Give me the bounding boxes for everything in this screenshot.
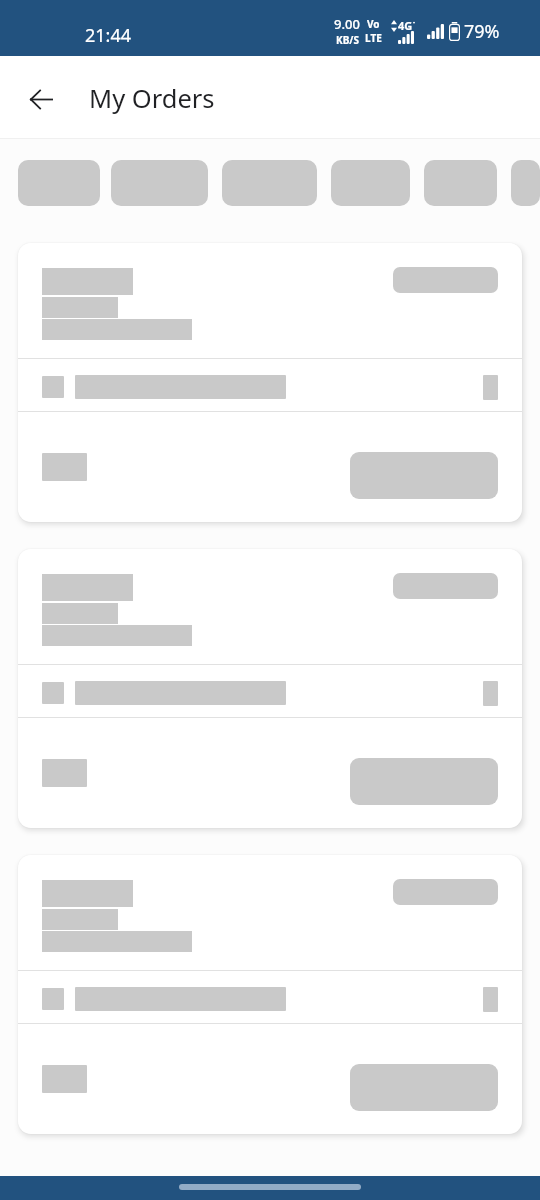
staticText: 79%: [464, 19, 500, 44]
button[interactable]: Back: [17, 75, 65, 123]
staticText: Vo: [367, 17, 380, 31]
staticText: LTE: [365, 31, 382, 45]
button[interactable]: [331, 160, 410, 206]
staticText: 9.00: [334, 15, 360, 33]
staticText: 21:44: [85, 23, 132, 48]
button[interactable]: [18, 855, 522, 1134]
button[interactable]: [18, 243, 522, 522]
staticText: KB/S: [336, 33, 359, 47]
button[interactable]: [18, 160, 100, 206]
button[interactable]: [111, 160, 208, 206]
staticText: My Orders: [89, 81, 215, 116]
button[interactable]: [511, 160, 540, 206]
button[interactable]: [222, 160, 317, 206]
staticText: 4G: [398, 18, 413, 33]
button[interactable]: [18, 549, 522, 828]
button[interactable]: [424, 160, 497, 206]
